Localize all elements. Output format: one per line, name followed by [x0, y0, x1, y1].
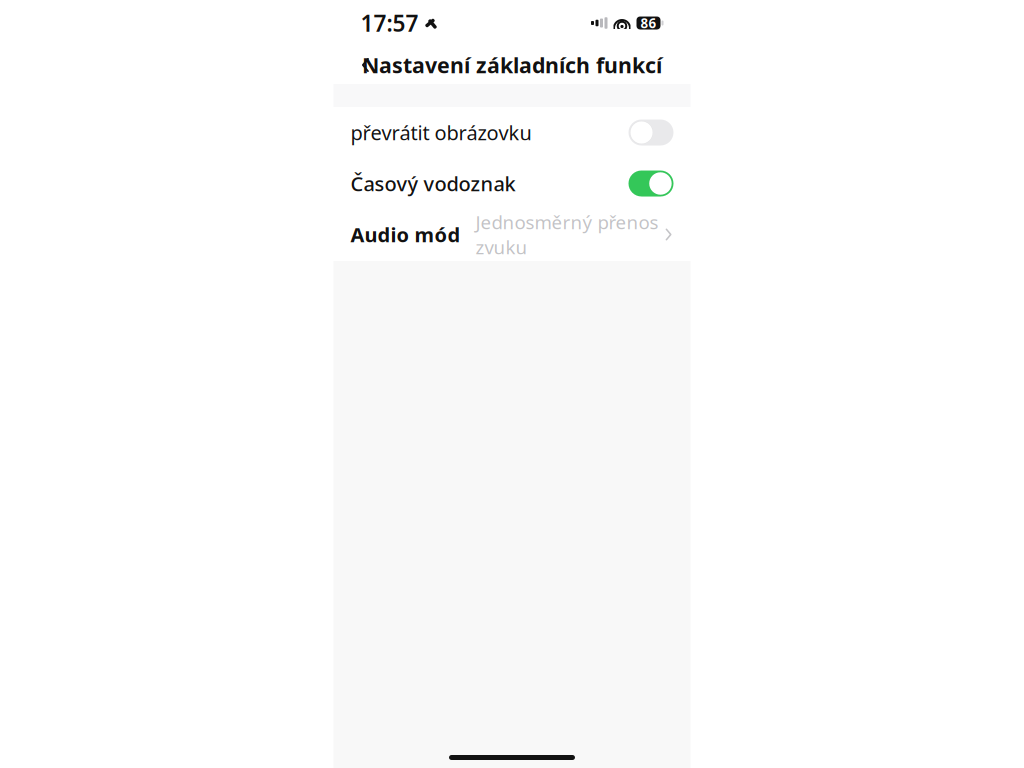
- staticText: převrátit obrázovku: [350, 119, 531, 146]
- staticText: Nastavení základních funkcí: [362, 51, 662, 79]
- button[interactable]: Back: [345, 45, 385, 85]
- staticText: Časový vodoznak: [350, 170, 515, 197]
- button[interactable]: převrátit obrázovku: [333, 107, 690, 158]
- staticText: 86: [640, 14, 656, 32]
- button[interactable]: Časový vodoznak: [333, 158, 690, 209]
- staticText: Jednosměrný přenos zvuku: [475, 210, 658, 259]
- button[interactable]: Audio mód: [333, 209, 690, 260]
- staticText: Audio mód: [350, 221, 460, 248]
- staticText: 17:57: [360, 8, 418, 38]
